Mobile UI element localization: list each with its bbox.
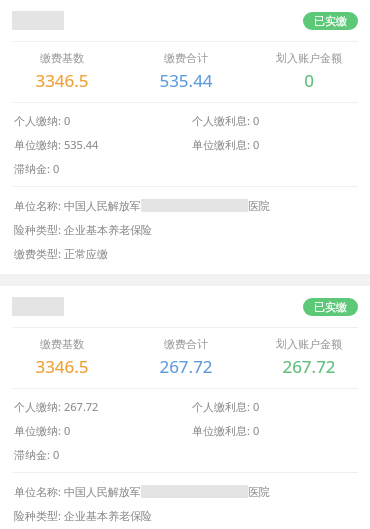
staticText: 0 bbox=[253, 137, 260, 152]
staticText: 267.72 bbox=[282, 355, 336, 378]
staticText: 3346.5 bbox=[35, 69, 89, 92]
staticText: 缴费基数 bbox=[40, 337, 84, 351]
staticText: 0 bbox=[53, 161, 60, 176]
staticText: 0 bbox=[64, 113, 71, 128]
staticText: 单位缴利息: bbox=[192, 137, 253, 152]
staticText: 单位缴纳: bbox=[14, 423, 64, 438]
staticText: 0 bbox=[253, 113, 260, 128]
staticText: 滞纳金: bbox=[14, 161, 53, 176]
staticText: 0 bbox=[253, 399, 260, 414]
staticText: 企业基本养老保险 bbox=[64, 509, 152, 523]
button[interactable]: 已实缴 status bbox=[303, 298, 358, 316]
staticText: 企业基本养老保险 bbox=[64, 223, 152, 237]
staticText: 缴费合计 bbox=[164, 337, 208, 351]
staticText: 单位缴纳: bbox=[14, 137, 64, 152]
staticText: 缴费类型: bbox=[14, 246, 64, 261]
staticText: 划入账户金额 bbox=[276, 51, 342, 65]
staticText: 单位名称: 中国人民解放军 bbox=[14, 198, 141, 213]
staticText: 划入账户金额 bbox=[276, 337, 342, 351]
staticText: 个人缴纳: bbox=[14, 399, 64, 414]
staticText: 0 bbox=[253, 423, 260, 438]
staticText: 个人缴纳: bbox=[14, 113, 64, 128]
staticText: 267.72 bbox=[159, 355, 213, 378]
staticText: 0 bbox=[53, 447, 60, 462]
staticText: 医院 bbox=[248, 199, 270, 213]
staticText: 缴费基数 bbox=[40, 51, 84, 65]
button[interactable]: 已实缴 status bbox=[0, 286, 370, 529]
staticText: 已实缴 bbox=[314, 300, 347, 314]
staticText: 单位缴利息: bbox=[192, 423, 253, 438]
staticText: 滞纳金: bbox=[14, 447, 53, 462]
staticText: 535.44 bbox=[159, 69, 213, 92]
staticText: 个人缴利息: bbox=[192, 113, 253, 128]
button[interactable]: 已实缴 status bbox=[0, 0, 370, 274]
staticText: 已实缴 bbox=[314, 14, 347, 28]
staticText: 0 bbox=[304, 69, 314, 92]
staticText: 医院 bbox=[248, 485, 270, 499]
staticText: 535.44 bbox=[64, 137, 99, 152]
staticText: 正常应缴 bbox=[64, 247, 108, 261]
staticText: 缴费合计 bbox=[164, 51, 208, 65]
button[interactable]: 已实缴 status bbox=[303, 12, 358, 30]
staticText: 个人缴利息: bbox=[192, 399, 253, 414]
staticText: 单位名称: 中国人民解放军 bbox=[14, 484, 141, 499]
staticText: 0 bbox=[64, 423, 71, 438]
staticText: 险种类型: bbox=[14, 222, 64, 237]
staticText: 险种类型: bbox=[14, 508, 64, 523]
staticText: 267.72 bbox=[64, 399, 99, 414]
staticText: 3346.5 bbox=[35, 355, 89, 378]
